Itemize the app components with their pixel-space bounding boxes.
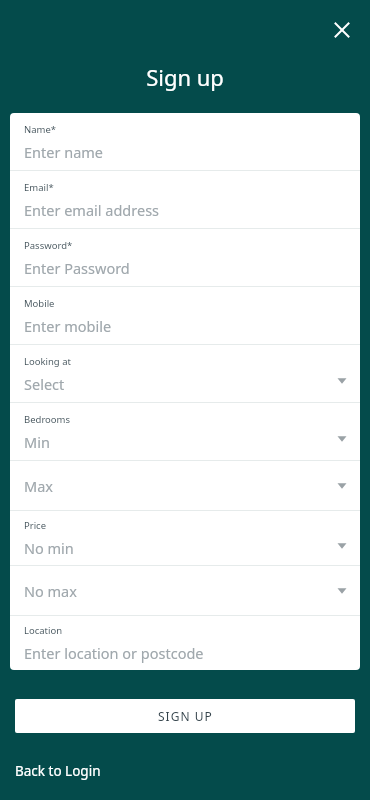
staticText: Bedrooms — [24, 413, 71, 426]
button[interactable]: Email* — [10, 171, 360, 229]
staticText: SIGN UP — [158, 708, 213, 724]
staticText: Email* — [24, 181, 54, 194]
button[interactable]: Bedrooms — [10, 403, 360, 461]
staticText: Enter name — [24, 142, 104, 162]
staticText: No min — [24, 538, 74, 558]
staticText: Enter email address — [24, 200, 160, 220]
staticText: Mobile — [24, 297, 55, 310]
staticText: No max — [24, 581, 77, 601]
button[interactable]: Looking at — [10, 345, 360, 403]
button[interactable]: Price — [10, 511, 360, 566]
staticText: Password* — [24, 239, 73, 252]
button[interactable]: Location — [10, 616, 360, 670]
staticText: Looking at — [24, 355, 71, 368]
staticText: Enter Password — [24, 258, 130, 278]
button[interactable]: Max — [10, 461, 360, 511]
button[interactable]: No max — [10, 566, 360, 616]
staticText: Max — [24, 476, 53, 496]
staticText: Select — [24, 374, 65, 394]
button[interactable]: Back to Login — [15, 762, 101, 780]
button[interactable]: Mobile — [10, 287, 360, 345]
button[interactable]: Name* — [10, 113, 360, 171]
button[interactable]: Close — [327, 15, 357, 45]
staticText: Enter mobile — [24, 316, 112, 336]
button[interactable]: SIGN UP — [15, 699, 355, 733]
staticText: Enter location or postcode — [24, 643, 204, 663]
staticText: Location — [24, 624, 63, 637]
staticText: Back to Login — [15, 762, 101, 780]
staticText: Sign up — [0, 62, 370, 92]
staticText: Price — [24, 519, 47, 532]
staticText: Min — [24, 432, 50, 452]
button[interactable]: Password* — [10, 229, 360, 287]
staticText: Name* — [24, 123, 57, 136]
